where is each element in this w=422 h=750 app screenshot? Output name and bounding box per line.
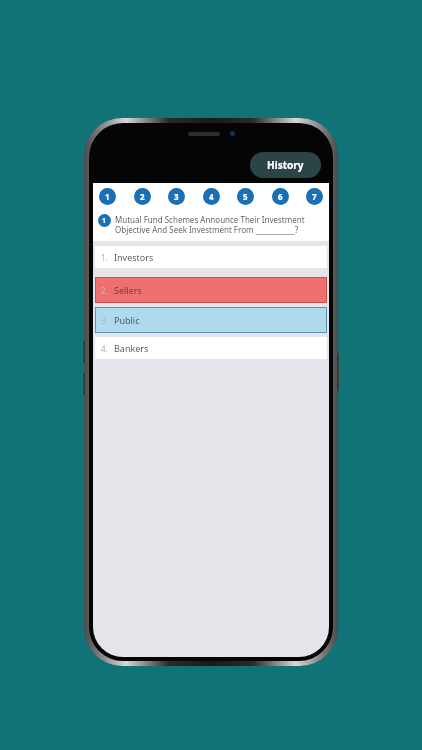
button[interactable]: 1 bbox=[99, 188, 116, 205]
staticText: Mutual Fund Schemes Announce Their Inves… bbox=[115, 214, 323, 235]
staticText: 2 bbox=[140, 191, 145, 202]
staticText: 1. bbox=[101, 252, 108, 263]
staticText: 7 bbox=[312, 191, 317, 202]
button[interactable]: 4. bbox=[95, 337, 327, 359]
staticText: History bbox=[267, 158, 304, 172]
button[interactable]: 4 bbox=[203, 188, 220, 205]
staticText: 2. bbox=[101, 285, 108, 296]
staticText: 1 bbox=[105, 191, 110, 202]
button[interactable]: 7 bbox=[306, 188, 323, 205]
staticText: 6 bbox=[278, 191, 283, 202]
staticText: Investors bbox=[114, 251, 154, 263]
button[interactable]: History bbox=[250, 152, 321, 178]
staticText: 1 bbox=[102, 216, 107, 226]
button[interactable]: 2 bbox=[134, 188, 151, 205]
button[interactable]: 3 bbox=[168, 188, 185, 205]
button[interactable]: 5 bbox=[237, 188, 254, 205]
staticText: Public bbox=[114, 314, 140, 326]
button[interactable]: 1. bbox=[95, 246, 327, 268]
staticText: 4. bbox=[101, 343, 108, 354]
staticText: 3. bbox=[101, 315, 108, 326]
staticText: 3 bbox=[174, 191, 179, 202]
staticText: 4 bbox=[209, 191, 214, 202]
staticText: Bankers bbox=[114, 342, 149, 354]
button[interactable]: 6 bbox=[272, 188, 289, 205]
button[interactable]: 2. bbox=[95, 277, 327, 303]
button[interactable]: 3. bbox=[95, 307, 327, 333]
staticText: 5 bbox=[243, 191, 248, 202]
staticText: Sellers bbox=[114, 284, 142, 296]
